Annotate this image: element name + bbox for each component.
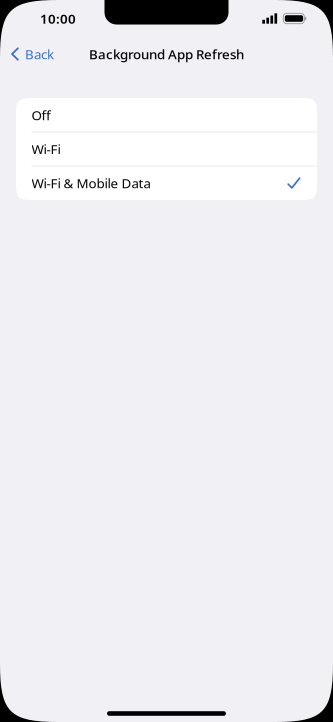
staticText: 10:00 — [40, 10, 76, 27]
staticText: Background App Refresh — [89, 45, 244, 63]
button[interactable]: Wi-Fi — [16, 132, 317, 166]
staticText: Off — [31, 106, 50, 124]
staticText: Wi-Fi — [31, 140, 60, 158]
button[interactable]: Wi-Fi & Mobile Data — [16, 166, 317, 200]
button[interactable]: Back — [0, 40, 64, 68]
button[interactable]: Off — [16, 98, 317, 132]
staticText: Back — [25, 45, 54, 63]
staticText: Wi-Fi & Mobile Data — [31, 174, 150, 192]
